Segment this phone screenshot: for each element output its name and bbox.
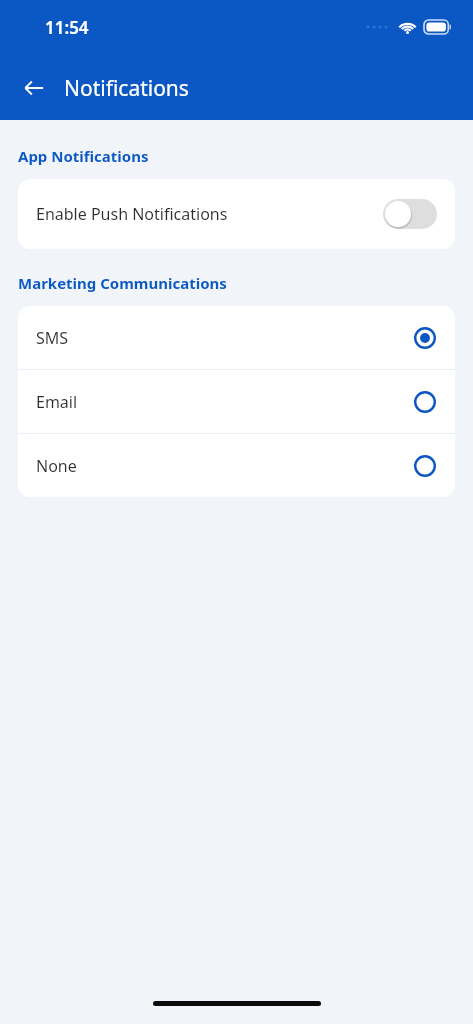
button[interactable]: Enable Push Notifications toggle xyxy=(383,199,437,229)
button[interactable]: SMS xyxy=(18,306,455,369)
button[interactable]: Enable Push Notifications xyxy=(18,179,455,249)
staticText: None xyxy=(36,455,77,477)
button[interactable]: Back xyxy=(14,68,54,108)
staticText: Marketing Communications xyxy=(18,273,227,293)
staticText: SMS xyxy=(36,327,69,349)
button[interactable]: Email xyxy=(18,370,455,433)
staticText: Enable Push Notifications xyxy=(36,203,228,225)
staticText: Email xyxy=(36,391,78,413)
staticText: App Notifications xyxy=(18,146,149,166)
staticText: Notifications xyxy=(64,74,189,103)
staticText: 11:54 xyxy=(45,16,89,39)
button[interactable]: None xyxy=(18,434,455,497)
